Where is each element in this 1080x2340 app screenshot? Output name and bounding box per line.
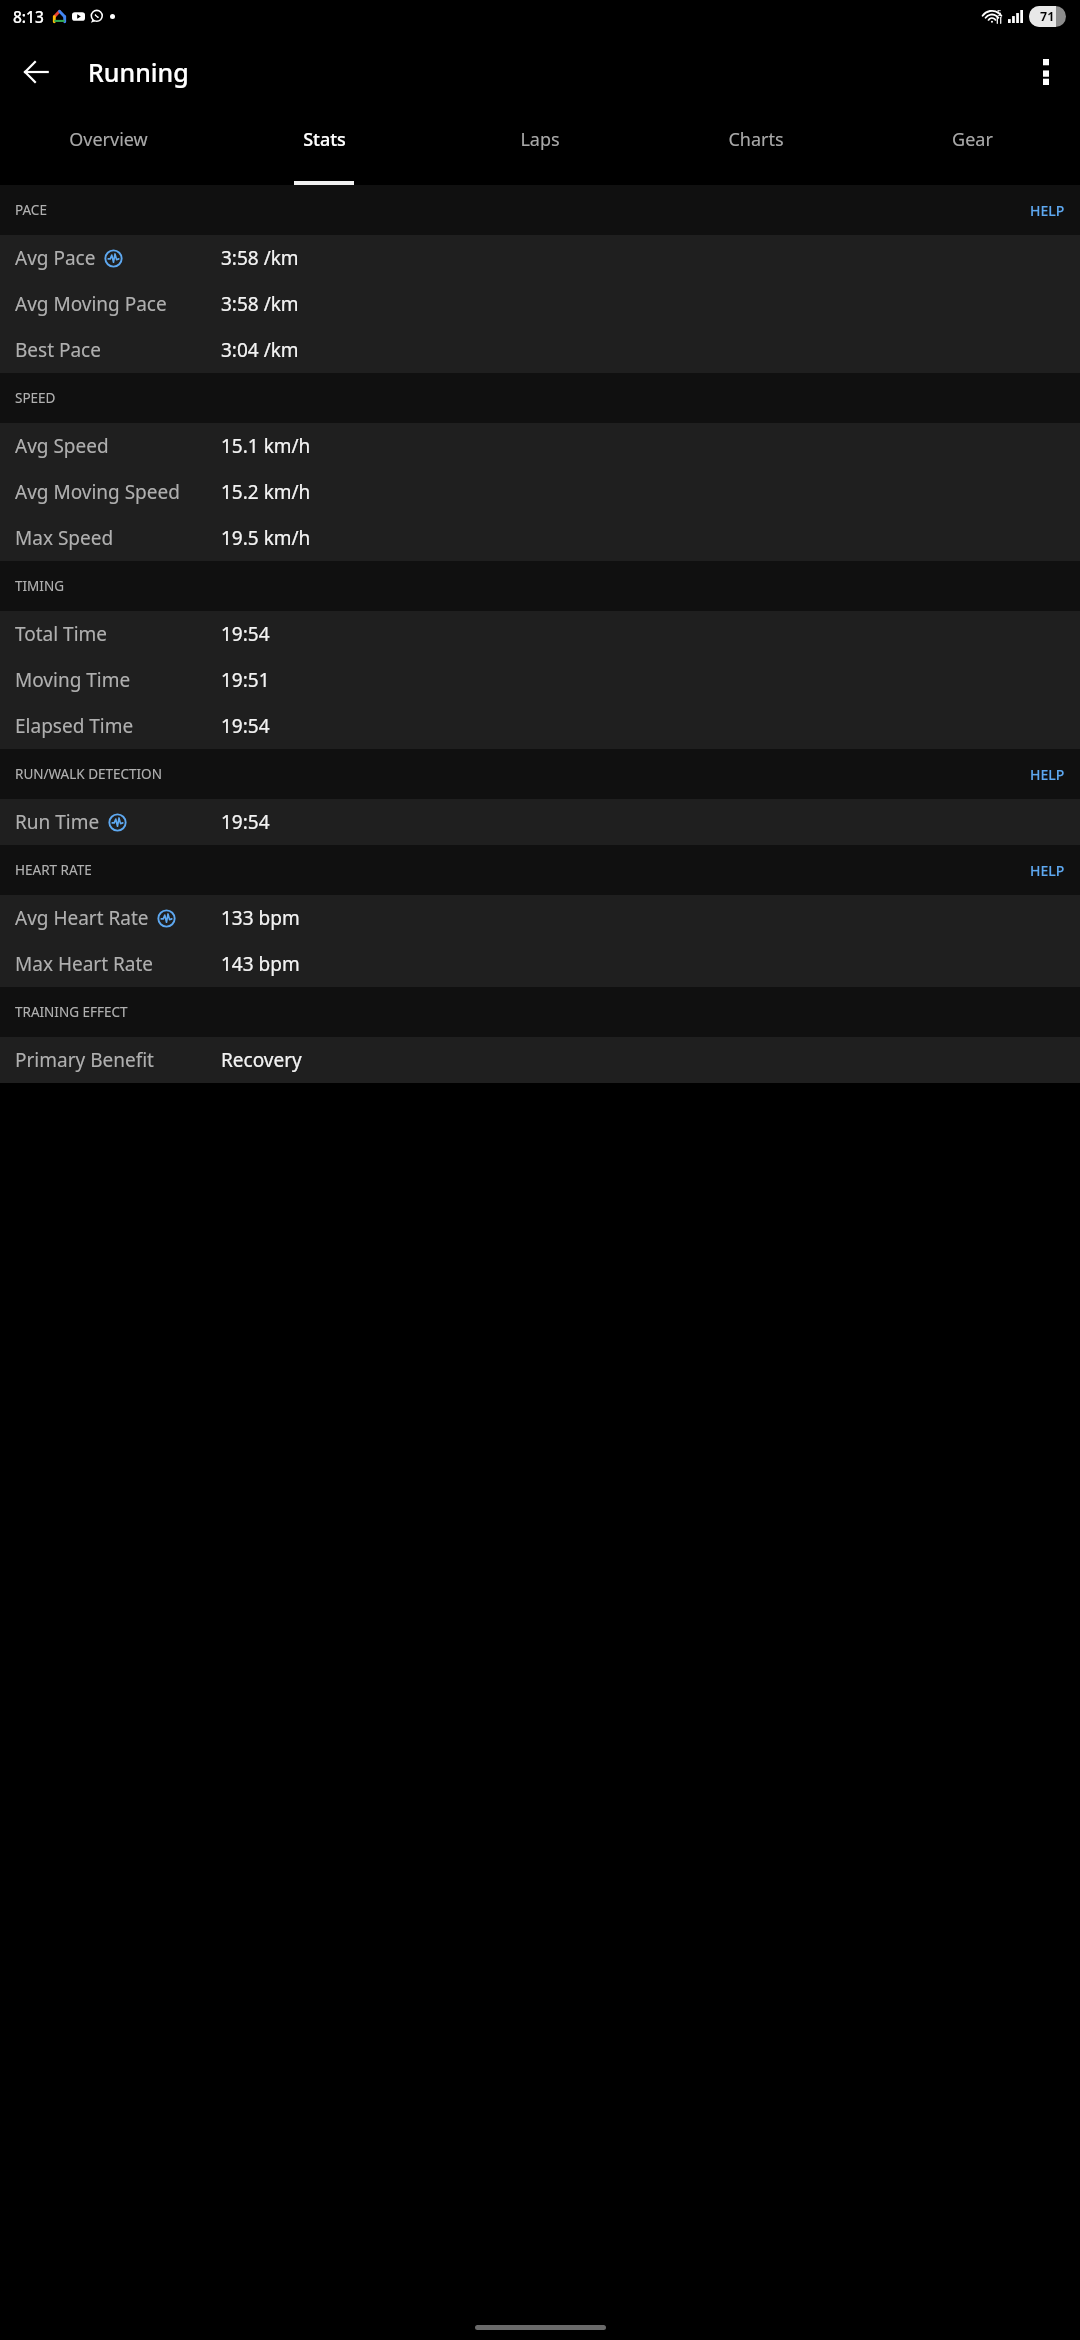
button[interactable]: Stats: [216, 111, 432, 185]
staticText: RUN/WALK DETECTION: [15, 765, 162, 783]
button[interactable]: Primary Benefit: [0, 1037, 1080, 1083]
button[interactable]: Elapsed Time: [0, 703, 1080, 749]
button[interactable]: Gear: [864, 111, 1080, 185]
button[interactable]: HELP: [1023, 759, 1072, 790]
staticText: 15.1 km/h: [221, 433, 311, 459]
staticText: 19:54: [221, 621, 270, 647]
button[interactable]: Avg Moving Speed: [0, 469, 1080, 515]
button[interactable]: Laps: [432, 111, 648, 185]
staticText: 3:58 /km: [221, 291, 299, 317]
staticText: Best Pace: [15, 337, 101, 363]
staticText: Recovery: [221, 1047, 302, 1073]
staticText: Elapsed Time: [15, 713, 134, 739]
button[interactable]: Back: [12, 48, 60, 96]
staticText: Gear: [952, 127, 993, 152]
button[interactable]: HELP: [1023, 855, 1072, 886]
staticText: PACE: [15, 201, 47, 219]
staticText: Avg Speed: [15, 433, 109, 459]
button[interactable]: Moving Time: [0, 657, 1080, 703]
staticText: Max Speed: [15, 525, 114, 551]
staticText: 19.5 km/h: [221, 525, 311, 551]
staticText: HELP: [1030, 201, 1065, 220]
staticText: Avg Moving Pace: [15, 291, 167, 317]
staticText: Running: [88, 55, 189, 89]
staticText: Max Heart Rate: [15, 951, 154, 977]
staticText: 133 bpm: [221, 905, 300, 931]
staticText: HEART RATE: [15, 861, 92, 879]
staticText: 3:58 /km: [221, 245, 299, 271]
button[interactable]: Max Heart Rate: [0, 941, 1080, 987]
button[interactable]: Max Speed: [0, 515, 1080, 561]
staticText: Avg Heart Rate: [15, 905, 149, 931]
button[interactable]: HELP: [1023, 195, 1072, 226]
staticText: Total Time: [15, 621, 108, 647]
staticText: Avg Pace: [15, 245, 96, 271]
staticText: SPEED: [15, 389, 56, 407]
button[interactable]: Avg Pace: [0, 235, 1080, 281]
staticText: TRAINING EFFECT: [15, 1003, 128, 1021]
button[interactable]: Avg Heart Rate: [0, 895, 1080, 941]
button[interactable]: Total Time: [0, 611, 1080, 657]
staticText: 3:04 /km: [221, 337, 299, 363]
button[interactable]: Charts: [648, 111, 864, 185]
staticText: HELP: [1030, 861, 1065, 880]
staticText: Avg Moving Speed: [15, 479, 180, 505]
staticText: Run Time: [15, 809, 100, 835]
staticText: 8:13: [13, 6, 44, 27]
staticText: 19:54: [221, 809, 270, 835]
staticText: Stats: [303, 127, 346, 152]
staticText: 71: [1040, 8, 1055, 25]
staticText: 19:54: [221, 713, 270, 739]
button[interactable]: Overview: [0, 111, 216, 185]
button[interactable]: Avg Moving Pace: [0, 281, 1080, 327]
staticText: Laps: [520, 127, 560, 152]
staticText: Primary Benefit: [15, 1047, 154, 1073]
button[interactable]: Run Time: [0, 799, 1080, 845]
staticText: 143 bpm: [221, 951, 300, 977]
button[interactable]: More options: [1022, 48, 1070, 96]
staticText: 19:51: [221, 667, 270, 693]
button[interactable]: Best Pace: [0, 327, 1080, 373]
staticText: Charts: [728, 127, 784, 152]
staticText: Overview: [69, 127, 148, 152]
staticText: TIMING: [15, 577, 64, 595]
button[interactable]: Avg Speed: [0, 423, 1080, 469]
staticText: 15.2 km/h: [221, 479, 311, 505]
staticText: HELP: [1030, 765, 1065, 784]
staticText: Moving Time: [15, 667, 131, 693]
